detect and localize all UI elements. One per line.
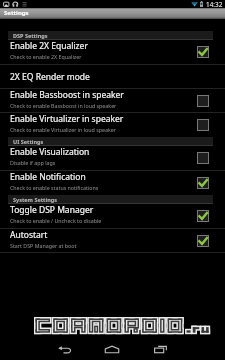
staticText: Toggle DSP Manager <box>10 204 94 216</box>
staticText: Disable if app lags <box>10 159 56 166</box>
button[interactable]: Enable Visualization <box>0 146 225 170</box>
button[interactable]: Toggle <box>197 46 209 58</box>
staticText: 14:32 <box>206 0 223 8</box>
staticText: Autostart <box>10 229 48 241</box>
button[interactable]: Toggle DSP Manager <box>0 204 225 228</box>
button[interactable]: Recent apps <box>136 338 184 360</box>
staticText: Enable Virtualizer in speaker <box>10 113 124 125</box>
button[interactable]: Enable Virtualizer in speaker <box>0 113 225 137</box>
button[interactable]: Toggle <box>197 119 209 131</box>
button[interactable]: 2X EQ Render mode <box>0 65 225 88</box>
button[interactable]: Toggle <box>197 152 209 164</box>
button[interactable]: Toggle <box>197 235 209 247</box>
button[interactable]: Enable Notification <box>0 171 225 195</box>
button[interactable]: Home <box>88 338 136 360</box>
staticText: Check to enable 2X Equalizer <box>10 53 82 60</box>
staticText: Enable 2X Equalizer <box>10 40 88 52</box>
staticText: DSP Settings <box>13 32 48 39</box>
button[interactable]: Enable Bassboost in speaker <box>0 89 225 112</box>
staticText: Check to enable Bassboost in loud speake… <box>10 102 117 109</box>
staticText: Start DSP Manager at boot <box>10 242 77 249</box>
button[interactable]: Back <box>40 338 88 360</box>
staticText: Check to enable Virtualizer in loud spea… <box>10 126 116 133</box>
staticText: Settings <box>4 9 29 17</box>
button[interactable]: Toggle <box>197 95 209 107</box>
button[interactable]: Toggle <box>197 177 209 189</box>
staticText: Check to enable / Uncheck to disable <box>10 217 102 224</box>
button[interactable]: Autostart <box>0 229 225 252</box>
staticText: System Settings <box>13 196 57 203</box>
staticText: Enable Bassboost in speaker <box>10 89 124 101</box>
staticText: Enable Visualization <box>10 146 90 158</box>
button[interactable]: Enable 2X Equalizer <box>0 40 225 64</box>
button[interactable]: Toggle <box>197 210 209 222</box>
staticText: Enable Notification <box>10 171 86 183</box>
staticText: UI Settings <box>13 138 44 145</box>
staticText: Check to enable status notifications <box>10 184 99 191</box>
staticText: 2X EQ Render mode <box>10 71 90 83</box>
